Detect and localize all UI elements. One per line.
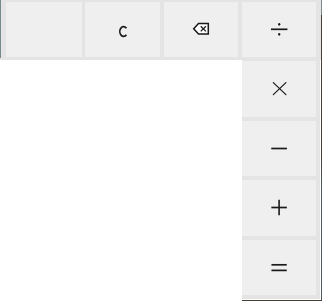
- button[interactable]: Add: [242, 180, 316, 236]
- button[interactable]: Clear: [85, 2, 160, 57]
- button[interactable]: Equals: [242, 240, 316, 295]
- button[interactable]: Backspace: [164, 2, 238, 57]
- button[interactable]: Subtract: [242, 121, 316, 176]
- button[interactable]: Multiply: [242, 61, 316, 117]
- button[interactable]: Divide: [242, 2, 316, 57]
